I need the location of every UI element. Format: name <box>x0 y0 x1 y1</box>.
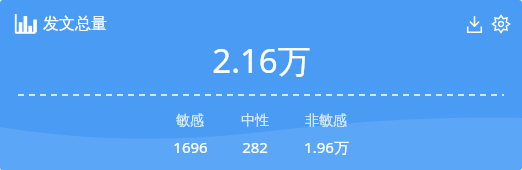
button[interactable]: Settings <box>488 11 514 37</box>
staticText: 1696 <box>173 137 208 157</box>
staticText: 282 <box>242 137 268 157</box>
button[interactable]: 非敏感 <box>289 112 363 157</box>
staticText: 发文总量 <box>43 14 107 34</box>
staticText: 敏感 <box>176 112 204 130</box>
button[interactable]: 敏感 <box>159 112 221 157</box>
staticText: 1.96万 <box>304 137 349 157</box>
button[interactable]: 中性 <box>229 112 281 157</box>
staticText: 2.16万 <box>212 38 311 83</box>
staticText: 中性 <box>241 112 269 130</box>
button[interactable]: Download <box>461 11 487 37</box>
staticText: 非敏感 <box>305 112 347 130</box>
